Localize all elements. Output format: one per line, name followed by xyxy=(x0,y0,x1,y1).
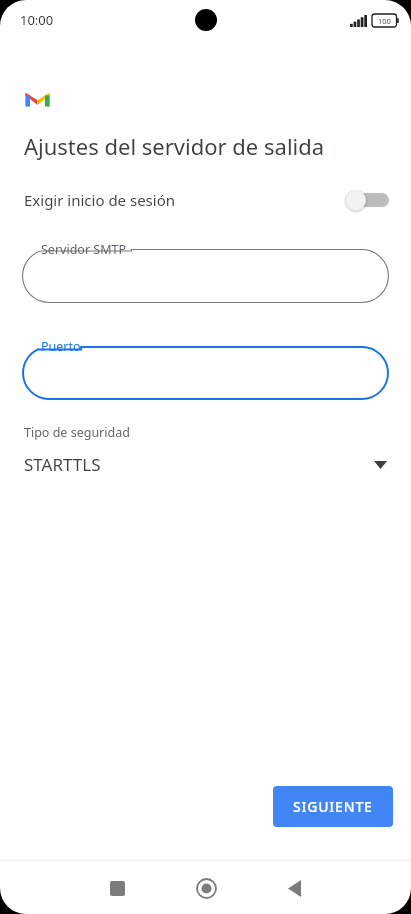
staticText: Servidor SMTP xyxy=(41,241,127,258)
staticText: Ajustes del servidor de salida xyxy=(24,131,325,161)
staticText: SIGUIENTE xyxy=(293,797,373,816)
staticText: 10:00 xyxy=(20,11,54,29)
staticText: Puerto xyxy=(41,338,81,355)
button[interactable]: Atrás xyxy=(274,868,314,908)
staticText: Tipo de seguridad xyxy=(24,424,130,441)
button[interactable]: Tipo de seguridad xyxy=(0,422,411,484)
button[interactable]: Exigir inicio de sesión xyxy=(345,187,389,213)
staticText: Exigir inicio de sesión xyxy=(24,190,176,210)
staticText: STARTTLS xyxy=(24,453,101,476)
staticText: 100 xyxy=(378,16,391,26)
button[interactable]: Inicio xyxy=(186,868,226,908)
button[interactable]: Servidor SMTP xyxy=(22,239,389,303)
button[interactable]: Puerto xyxy=(22,336,389,400)
button[interactable]: Exigir inicio de sesión xyxy=(0,181,411,219)
button[interactable]: Recientes xyxy=(97,868,137,908)
button[interactable]: SIGUIENTE xyxy=(273,786,393,827)
